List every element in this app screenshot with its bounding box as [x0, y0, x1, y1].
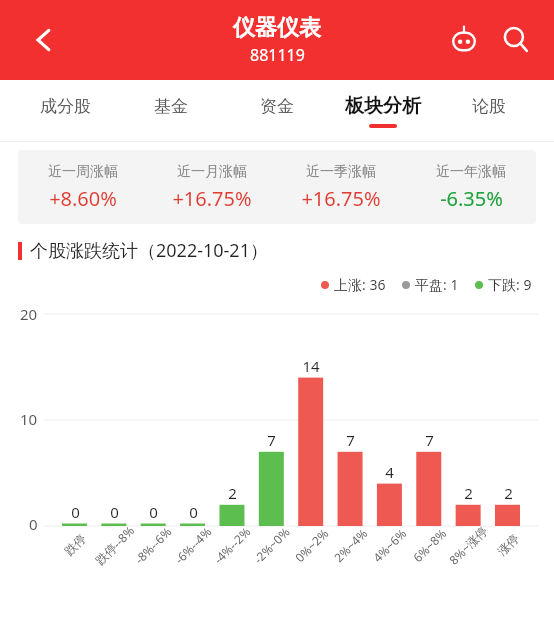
staticText: 20 [20, 304, 38, 324]
staticText: 0 [29, 514, 38, 534]
staticText: -2%~0% [250, 523, 293, 566]
staticText: 6%~8% [409, 525, 450, 565]
button[interactable]: Search [492, 16, 540, 64]
staticText: -8%--6% [131, 523, 175, 567]
staticText: 0%~2% [291, 525, 332, 565]
staticText: 2 [464, 483, 473, 503]
staticText: 成分股 [40, 96, 91, 117]
staticText: -4%--2% [210, 523, 254, 567]
staticText: 板块分析 [345, 94, 421, 118]
button[interactable]: Back [20, 16, 68, 64]
staticText: 近一季涨幅 [306, 163, 376, 181]
staticText: 7 [267, 430, 276, 450]
staticText: 近一年涨幅 [436, 163, 506, 181]
staticText: 跌停 [61, 531, 89, 558]
staticText: 0 [149, 502, 158, 522]
staticText: 基金 [154, 96, 188, 117]
button[interactable]: 论股 [436, 80, 542, 142]
staticText: +16.75% [301, 185, 381, 212]
staticText: 上涨: 36 [334, 275, 386, 294]
staticText: 2%~4% [330, 525, 371, 565]
staticText: +8.60% [49, 185, 117, 212]
staticText: 7 [346, 430, 355, 450]
staticText: 2 [504, 483, 513, 503]
staticText: 10 [20, 409, 38, 429]
staticText: 0 [71, 502, 80, 522]
staticText: 论股 [472, 96, 506, 117]
staticText: 0 [110, 502, 119, 522]
staticText: 7 [425, 430, 434, 450]
button[interactable]: 基金 [118, 80, 224, 142]
staticText: 近一周涨幅 [48, 163, 118, 181]
staticText: 资金 [260, 96, 294, 117]
staticText: 2 [228, 483, 237, 503]
button[interactable]: 成分股 [12, 80, 118, 142]
staticText: 4 [385, 462, 394, 482]
staticText: 4%~6% [369, 525, 410, 565]
staticText: 仪器仪表 [233, 14, 321, 42]
staticText: 下跌: 9 [488, 275, 532, 294]
staticText: 881119 [250, 44, 305, 66]
staticText: 0 [189, 502, 198, 522]
staticText: -6.35% [440, 185, 503, 212]
button[interactable]: Assistant [440, 16, 488, 64]
button[interactable]: 板块分析 [330, 80, 436, 142]
staticText: 跌停--8% [91, 522, 137, 568]
button[interactable]: 资金 [224, 80, 330, 142]
staticText: 个股涨跌统计（2022-10-21） [30, 238, 268, 263]
staticText: 涨停 [494, 531, 522, 558]
staticText: 14 [302, 356, 320, 376]
staticText: -6%--4% [171, 523, 215, 567]
staticText: 8%~涨停 [445, 522, 491, 568]
staticText: 平盘: 1 [415, 275, 459, 294]
staticText: +16.75% [172, 185, 252, 212]
staticText: 近一月涨幅 [177, 163, 247, 181]
